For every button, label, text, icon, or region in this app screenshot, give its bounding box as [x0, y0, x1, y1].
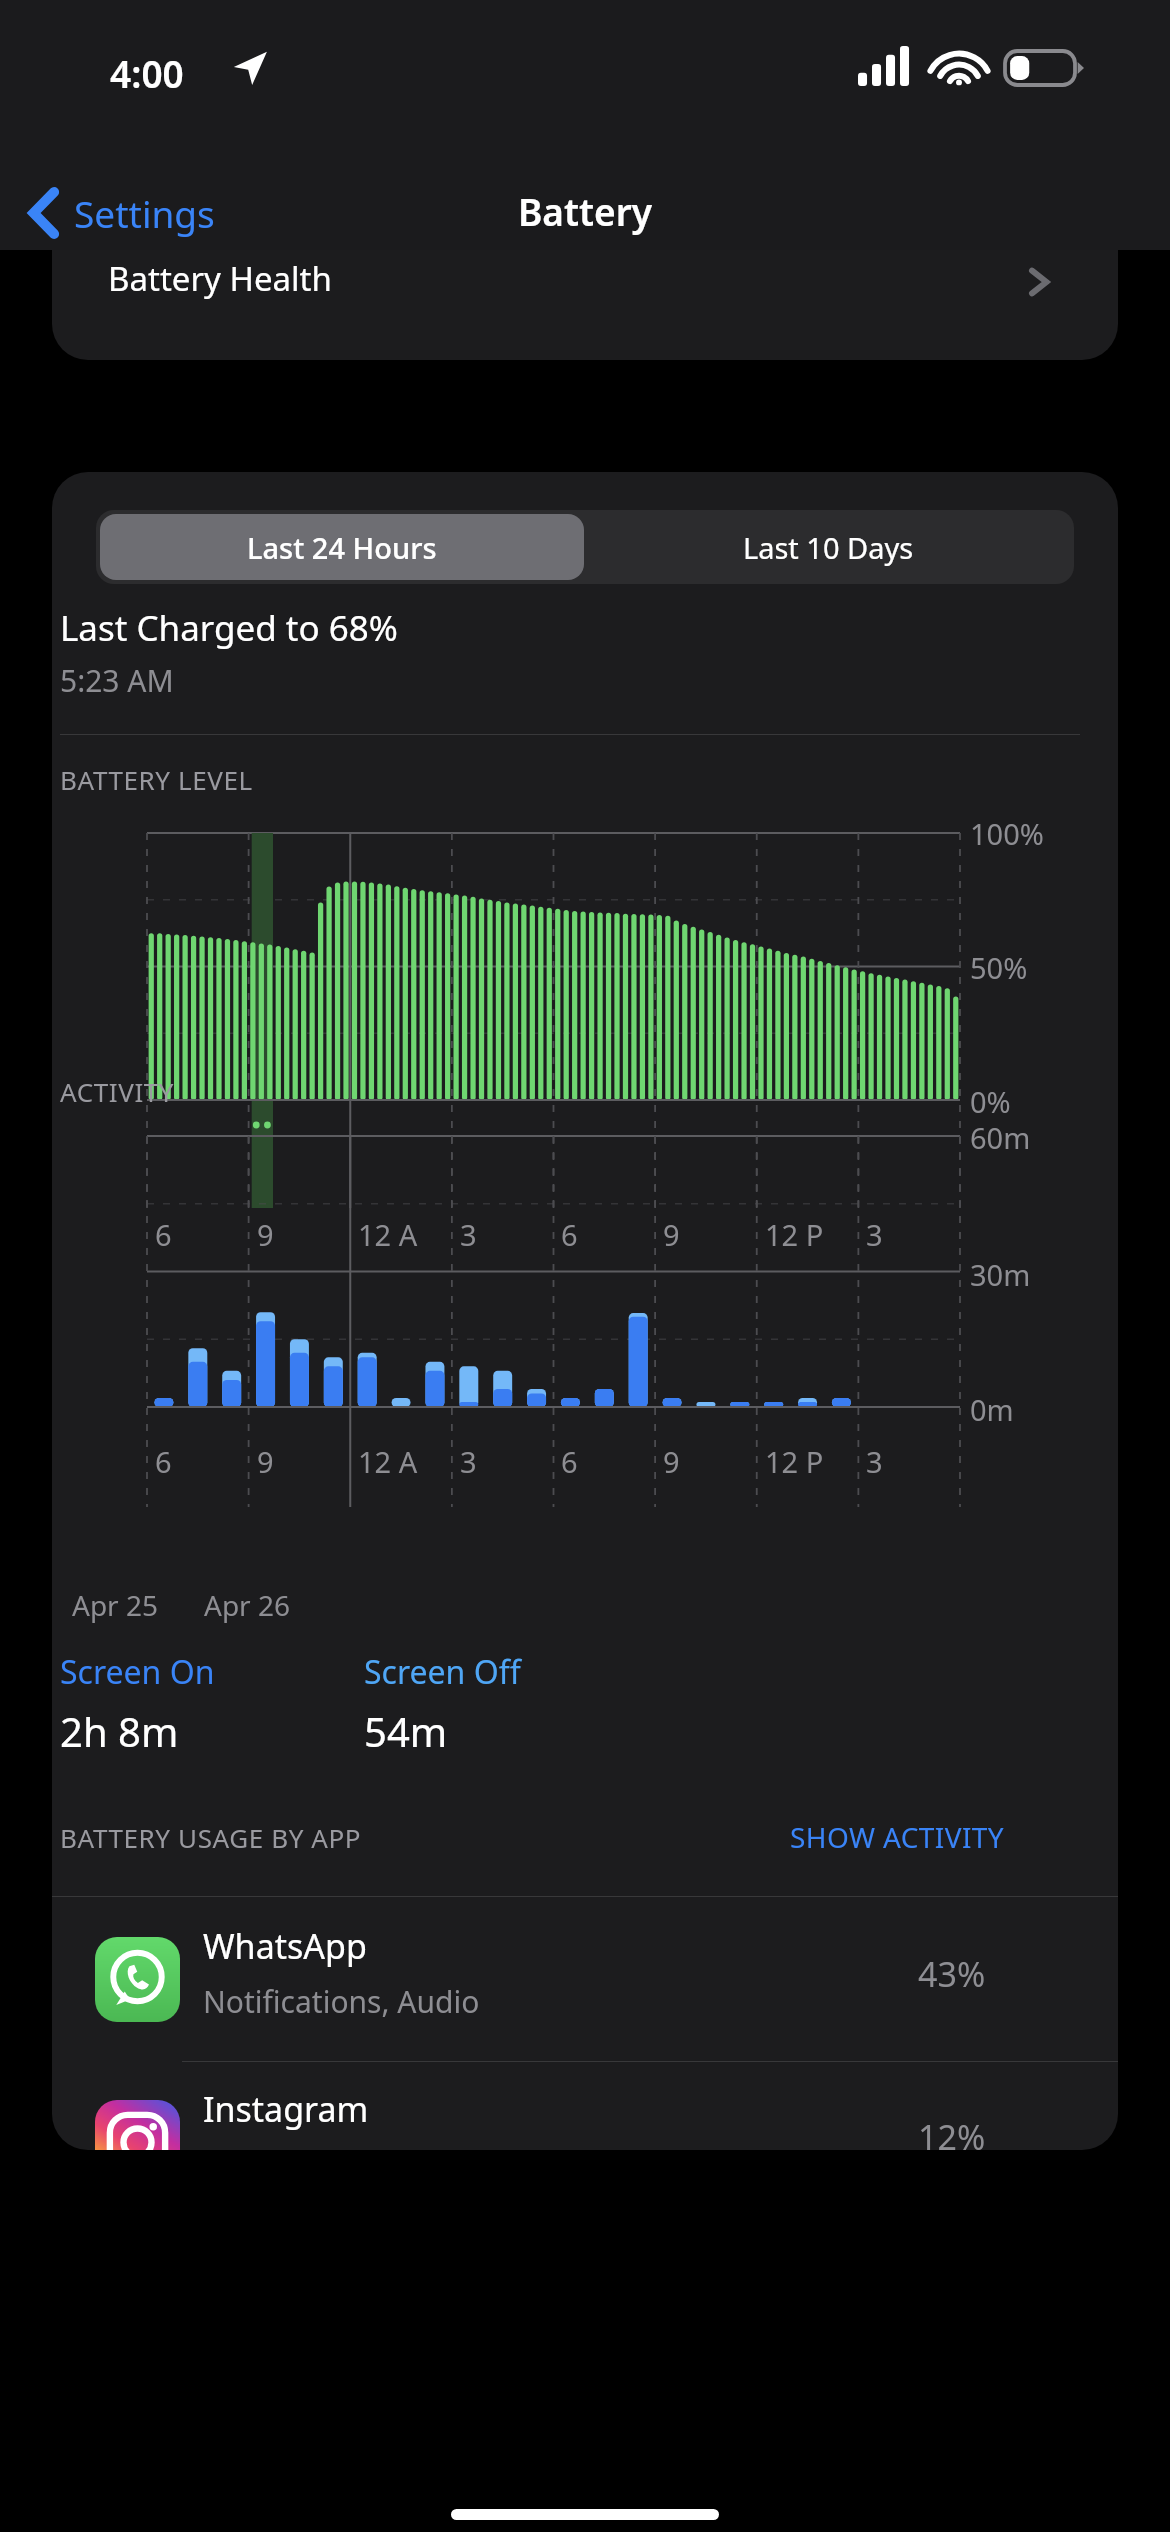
button[interactable]: Screen Off: [364, 1650, 664, 1780]
staticText: 54m: [364, 1704, 448, 1758]
staticText: Last 24 Hours: [247, 528, 437, 567]
staticText: 60m: [970, 1118, 1031, 1157]
staticText: WhatsApp: [203, 1923, 367, 1969]
button[interactable]: Battery Health: [52, 112, 1118, 360]
staticText: SHOW ACTIVITY: [790, 1818, 1005, 1856]
staticText: Apr 26: [204, 1586, 290, 1624]
staticText: 12 P: [765, 1442, 824, 1481]
staticText: ACTIVITY: [60, 1074, 175, 1109]
staticText: 12 A: [358, 1215, 418, 1254]
staticText: 12 P: [765, 1215, 824, 1254]
staticText: 9: [663, 1215, 680, 1254]
staticText: 6: [155, 1215, 172, 1254]
button[interactable]: Settings: [12, 176, 302, 252]
staticText: 43%: [918, 1951, 986, 1997]
staticText: 0%: [970, 1082, 1011, 1121]
staticText: 9: [663, 1442, 680, 1481]
staticText: 6: [155, 1442, 172, 1481]
staticText: 9: [257, 1442, 274, 1481]
staticText: Instagram: [203, 2086, 369, 2132]
staticText: Apr 25: [72, 1586, 158, 1624]
staticText: BATTERY LEVEL: [60, 762, 253, 797]
button[interactable]: WhatsApp: [52, 1897, 1118, 2061]
staticText: Last 10 Days: [743, 528, 914, 567]
staticText: 2h 8m: [60, 1704, 179, 1758]
staticText: 30m: [970, 1255, 1031, 1294]
staticText: 9: [257, 1215, 274, 1254]
staticText: BATTERY USAGE BY APP: [60, 1820, 362, 1855]
staticText: 12%: [918, 2114, 986, 2150]
staticText: 3: [866, 1215, 883, 1254]
button[interactable]: Last 24 Hours: [100, 514, 584, 580]
staticText: 12 A: [358, 1442, 418, 1481]
button[interactable]: Instagram: [52, 2062, 1118, 2150]
staticText: Notifications, Audio: [203, 1981, 480, 2022]
staticText: 4:00: [110, 48, 184, 98]
other: Location active: [232, 50, 268, 86]
staticText: 6: [561, 1442, 578, 1481]
staticText: 3: [460, 1442, 477, 1481]
staticText: Screen Off: [364, 1650, 521, 1694]
button[interactable]: Screen On: [52, 1650, 352, 1780]
staticText: 0m: [970, 1390, 1014, 1429]
staticText: Screen On: [60, 1650, 215, 1694]
staticText: Settings: [74, 188, 215, 238]
staticText: 50%: [970, 948, 1028, 987]
staticText: Battery: [0, 186, 1170, 236]
staticText: Last Charged to 68%: [60, 604, 398, 652]
button[interactable]: Last 10 Days: [586, 514, 1070, 580]
staticText: 3: [460, 1215, 477, 1254]
staticText: 5:23 AM: [60, 660, 174, 701]
staticText: 3: [866, 1442, 883, 1481]
staticText: 6: [561, 1215, 578, 1254]
staticText: 100%: [970, 814, 1044, 853]
button[interactable]: SHOW ACTIVITY: [732, 1812, 1076, 1868]
staticText: Battery Health: [108, 256, 332, 301]
